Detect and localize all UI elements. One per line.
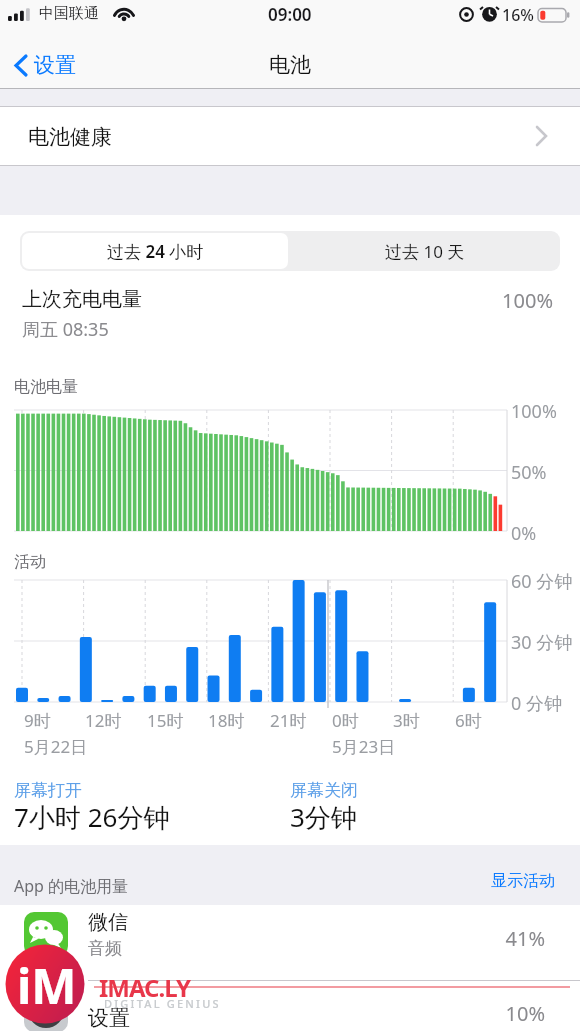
staticText: 50% — [511, 460, 547, 485]
staticText: 设置 — [88, 1005, 130, 1031]
staticText: 15时 — [147, 709, 184, 732]
staticText: 电池 — [269, 52, 311, 78]
staticText: 屏幕打开 — [14, 780, 82, 801]
staticText: DIGITAL GENIUS — [104, 996, 221, 1011]
staticText: 0 分钟 — [511, 691, 562, 716]
button[interactable]: 电池健康 — [0, 106, 580, 166]
staticText: 10% — [505, 1000, 545, 1027]
button[interactable]: 微信 — [0, 905, 580, 980]
button[interactable]: 设置 — [0, 981, 580, 1031]
button[interactable]: 显示活动 — [455, 871, 555, 901]
staticText: 0时 — [332, 709, 359, 732]
staticText: 过去 24 小时 — [107, 240, 204, 263]
staticText: 屏幕关闭 — [290, 780, 358, 801]
staticText: 5月23日 — [332, 735, 396, 758]
staticText: 上次充电电量 — [22, 287, 142, 312]
button[interactable]: 过去 10 天 — [290, 231, 560, 271]
staticText: 100% — [511, 399, 557, 424]
staticText: 音频 — [88, 938, 122, 959]
staticText: 60 分钟 — [511, 569, 573, 594]
staticText: 0% — [511, 521, 537, 546]
button[interactable]: 设置 — [10, 40, 76, 89]
button[interactable]: 过去 24 小时 — [22, 233, 288, 269]
staticText: 09:00 — [268, 3, 312, 26]
staticText: iM — [17, 953, 77, 1018]
staticText: 中国联通 — [39, 4, 99, 23]
staticText: 设置 — [34, 52, 76, 78]
staticText: 微信 — [88, 910, 128, 935]
staticText: 16% — [502, 4, 534, 26]
staticText: 6时 — [455, 709, 482, 732]
staticText: 5月22日 — [24, 735, 88, 758]
staticText: 41% — [505, 925, 545, 952]
staticText: 30 分钟 — [511, 630, 573, 655]
staticText: 周五 08:35 — [22, 317, 109, 342]
staticText: 电池电量 — [14, 377, 78, 397]
staticText: 活动 — [14, 552, 46, 572]
staticText: 18时 — [208, 709, 245, 732]
staticText: 100% — [502, 287, 553, 314]
staticText: App 的电池用量 — [14, 875, 129, 897]
staticText: 显示活动 — [491, 871, 555, 891]
staticText: 9时 — [24, 709, 51, 732]
staticText: 7小时 26分钟 — [14, 799, 170, 835]
staticText: 3时 — [393, 709, 420, 732]
staticText: 12时 — [85, 709, 122, 732]
staticText: 3分钟 — [290, 799, 357, 835]
staticText: 21时 — [270, 709, 307, 732]
staticText: IMAC.LY — [99, 971, 190, 1004]
staticText: 电池健康 — [28, 124, 112, 150]
staticText: 过去 10 天 — [385, 240, 465, 263]
